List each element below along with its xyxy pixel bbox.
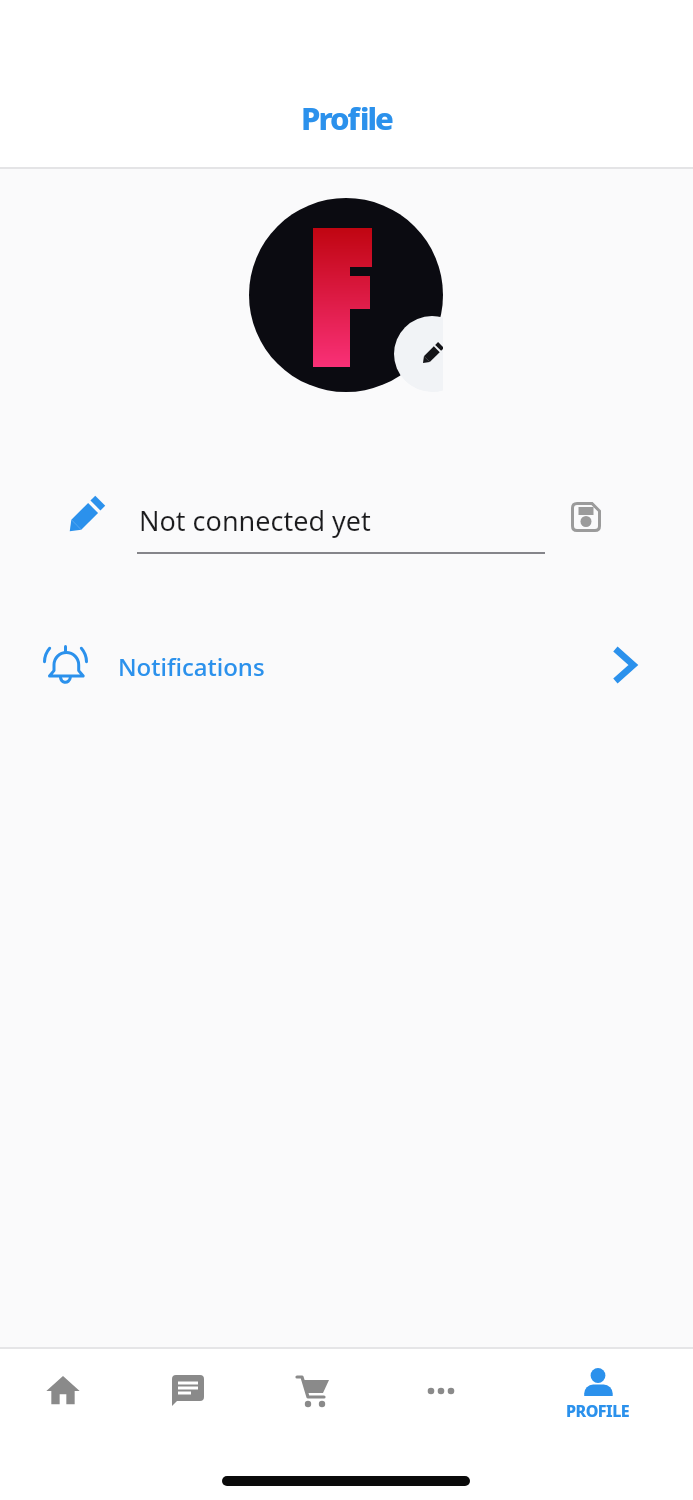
button[interactable] — [28, 1356, 98, 1426]
button[interactable]: PROFILE — [558, 1354, 638, 1426]
button[interactable]: Notifications — [30, 628, 650, 700]
button[interactable] — [557, 488, 615, 546]
button[interactable] — [394, 316, 443, 392]
staticText: Notifications — [118, 650, 265, 683]
button[interactable] — [406, 1356, 476, 1426]
staticText: Not connected yet — [139, 502, 371, 539]
button[interactable]: Not connected yet — [40, 487, 545, 567]
button[interactable] — [278, 1356, 348, 1426]
staticText: Profile — [301, 97, 392, 139]
staticText: PROFILE — [566, 1400, 630, 1422]
button[interactable] — [153, 1356, 223, 1426]
